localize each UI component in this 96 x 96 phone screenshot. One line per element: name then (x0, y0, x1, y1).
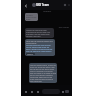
button[interactable]: Search (63, 3, 67, 7)
button[interactable]: Thanks for reaching out! I checked the r… (25, 28, 54, 38)
staticText: tracking.example.com/9f32ab carrier stat… (26, 44, 54, 52)
button[interactable]: Contact avatar (32, 3, 36, 7)
staticText: View all (27, 53, 34, 55)
button[interactable]: View all (26, 53, 35, 55)
button[interactable] (42, 89, 60, 94)
staticText: SKB Team (36, 3, 49, 7)
staticText: Yesterday (25, 10, 69, 12)
button[interactable]: More options (67, 3, 71, 7)
button[interactable]: Camera (29, 89, 34, 94)
button[interactable]: Back (23, 3, 28, 8)
staticText: That all makes sense, thanks so much for… (30, 64, 56, 82)
button[interactable]: Gallery (35, 89, 40, 94)
button[interactable]: Attach file (23, 89, 28, 94)
button[interactable]: Voice message (60, 89, 65, 94)
staticText: Hi quick check on our order (26, 14, 37, 20)
staticText: sent Tuesday (25, 26, 69, 28)
button[interactable]: Here are the tracking details you asked … (25, 39, 55, 56)
button[interactable]: Send (65, 90, 69, 93)
button[interactable]: Hi quick check on our order (25, 13, 38, 21)
staticText: Here are the tracking details you asked … (26, 40, 54, 44)
staticText: Thanks for reaching out! I checked the r… (26, 29, 53, 37)
button[interactable]: That all makes sense, thanks so much for… (29, 63, 57, 83)
